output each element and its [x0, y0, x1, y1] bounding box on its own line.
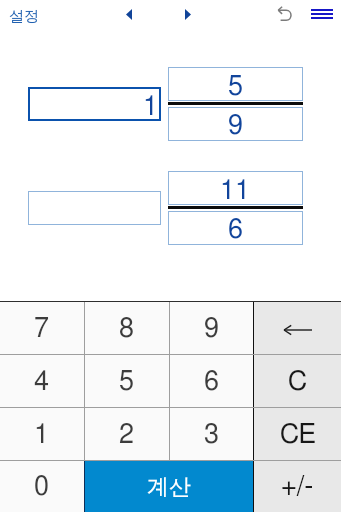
staticText: 3: [204, 421, 220, 448]
button[interactable]: Backspace: [254, 302, 341, 354]
staticText: 5: [119, 368, 135, 395]
button[interactable]: Undo: [271, 0, 299, 28]
staticText: 7: [34, 315, 50, 342]
staticText: 계산: [147, 473, 191, 501]
button[interactable]: 6: [168, 211, 303, 245]
staticText: 설정: [9, 7, 39, 25]
button[interactable]: 1: [28, 87, 161, 121]
staticText: 1: [143, 93, 159, 120]
button[interactable]: 1: [0, 408, 84, 460]
button[interactable]: 3: [170, 408, 253, 460]
button[interactable]: CE: [254, 408, 341, 460]
other: Backspace: [284, 324, 312, 336]
button[interactable]: 7: [0, 302, 84, 354]
button[interactable]: 9: [170, 302, 253, 354]
staticText: 1: [34, 421, 50, 448]
button[interactable]: 9: [168, 107, 303, 141]
staticText: 2: [119, 421, 135, 448]
button[interactable]: C: [254, 355, 341, 407]
staticText: 9: [228, 112, 244, 139]
staticText: C: [288, 368, 308, 395]
button[interactable]: 2: [85, 408, 169, 460]
button[interactable]: 계산: [85, 461, 253, 512]
button[interactable]: 11: [168, 171, 303, 205]
button[interactable]: [28, 191, 161, 225]
staticText: +/-: [281, 473, 314, 500]
staticText: 9: [204, 315, 220, 342]
button[interactable]: Previous: [118, 3, 140, 25]
staticText: 5: [228, 73, 244, 100]
button[interactable]: Next: [177, 3, 199, 25]
staticText: 11: [220, 177, 251, 204]
button[interactable]: 4: [0, 355, 84, 407]
button[interactable]: Menu: [303, 0, 341, 28]
staticText: 6: [228, 216, 244, 243]
staticText: CE: [280, 421, 316, 448]
button[interactable]: 8: [85, 302, 169, 354]
staticText: 0: [34, 473, 50, 500]
staticText: 4: [34, 368, 50, 395]
staticText: 6: [204, 368, 220, 395]
button[interactable]: 5: [168, 67, 303, 101]
button[interactable]: 0: [0, 461, 84, 512]
button[interactable]: 6: [170, 355, 253, 407]
staticText: 8: [119, 315, 135, 342]
button[interactable]: 5: [85, 355, 169, 407]
button[interactable]: +/-: [254, 461, 341, 512]
button[interactable]: 설정: [1, 2, 47, 30]
